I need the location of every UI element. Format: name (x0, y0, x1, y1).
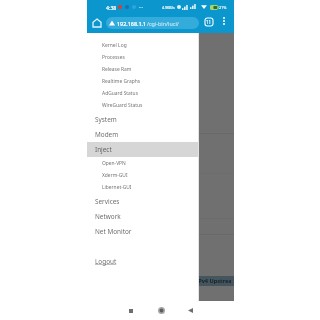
staticText: Realtime Graphs (102, 78, 141, 85)
staticText: 4.9KB/s (162, 5, 175, 10)
button[interactable]: Inject (87, 142, 199, 157)
button[interactable]: Net Monitor (87, 224, 199, 239)
button[interactable]: Recents (122, 302, 139, 319)
button[interactable]: System (87, 112, 199, 127)
staticText: System (95, 115, 117, 124)
staticText: 11 (206, 19, 212, 25)
staticText: IPv4 Upstream (199, 277, 231, 285)
staticText: Services (95, 197, 120, 206)
staticText: Modem (95, 130, 119, 139)
staticText: Inject (95, 145, 112, 154)
staticText: Release Ram (102, 66, 132, 73)
button[interactable]: Kernel Log (87, 39, 199, 51)
button[interactable]: AdGuard Status (87, 87, 199, 99)
staticText: Logout (95, 257, 117, 266)
button[interactable]: Open-VPN (87, 157, 199, 169)
button[interactable]: Xderm-GUI (87, 169, 199, 181)
button[interactable]: Home (153, 302, 170, 319)
button[interactable]: Services (87, 194, 199, 209)
button[interactable]: WireGuard Status (87, 99, 199, 111)
staticText: 192.168.1.1 (117, 20, 147, 27)
staticText: Kernel Log (102, 42, 127, 49)
button[interactable]: Realtime Graphs (87, 75, 199, 87)
button[interactable]: Libernet-GUI (87, 181, 199, 193)
staticText: 4:38 (106, 4, 117, 11)
staticText: Open-VPN (102, 160, 126, 167)
button[interactable]: Logout (87, 254, 199, 268)
button[interactable]: Network (87, 209, 199, 224)
button[interactable]: Modem (87, 127, 199, 142)
button[interactable]: 192.168.1.1 (106, 17, 199, 29)
staticText: Net Monitor (95, 227, 132, 236)
button[interactable]: Home (88, 14, 105, 31)
staticText: Libernet-GUI (102, 184, 132, 191)
button[interactable]: More options (217, 14, 231, 28)
staticText: AdGuard Status (102, 90, 138, 97)
staticText: /cgi-bin/luci/ (147, 20, 179, 27)
staticText: Network (95, 212, 121, 221)
button[interactable]: Processes (87, 51, 199, 63)
button[interactable]: Release Ram (87, 63, 199, 75)
button[interactable]: Tabs (201, 14, 216, 29)
staticText: ··· (139, 4, 144, 11)
staticText: WireGuard Status (102, 102, 143, 109)
staticText: 21% (219, 5, 227, 10)
button[interactable]: Back (182, 302, 199, 319)
staticText: Processes (102, 54, 125, 61)
staticText: Xderm-GUI (102, 172, 128, 179)
